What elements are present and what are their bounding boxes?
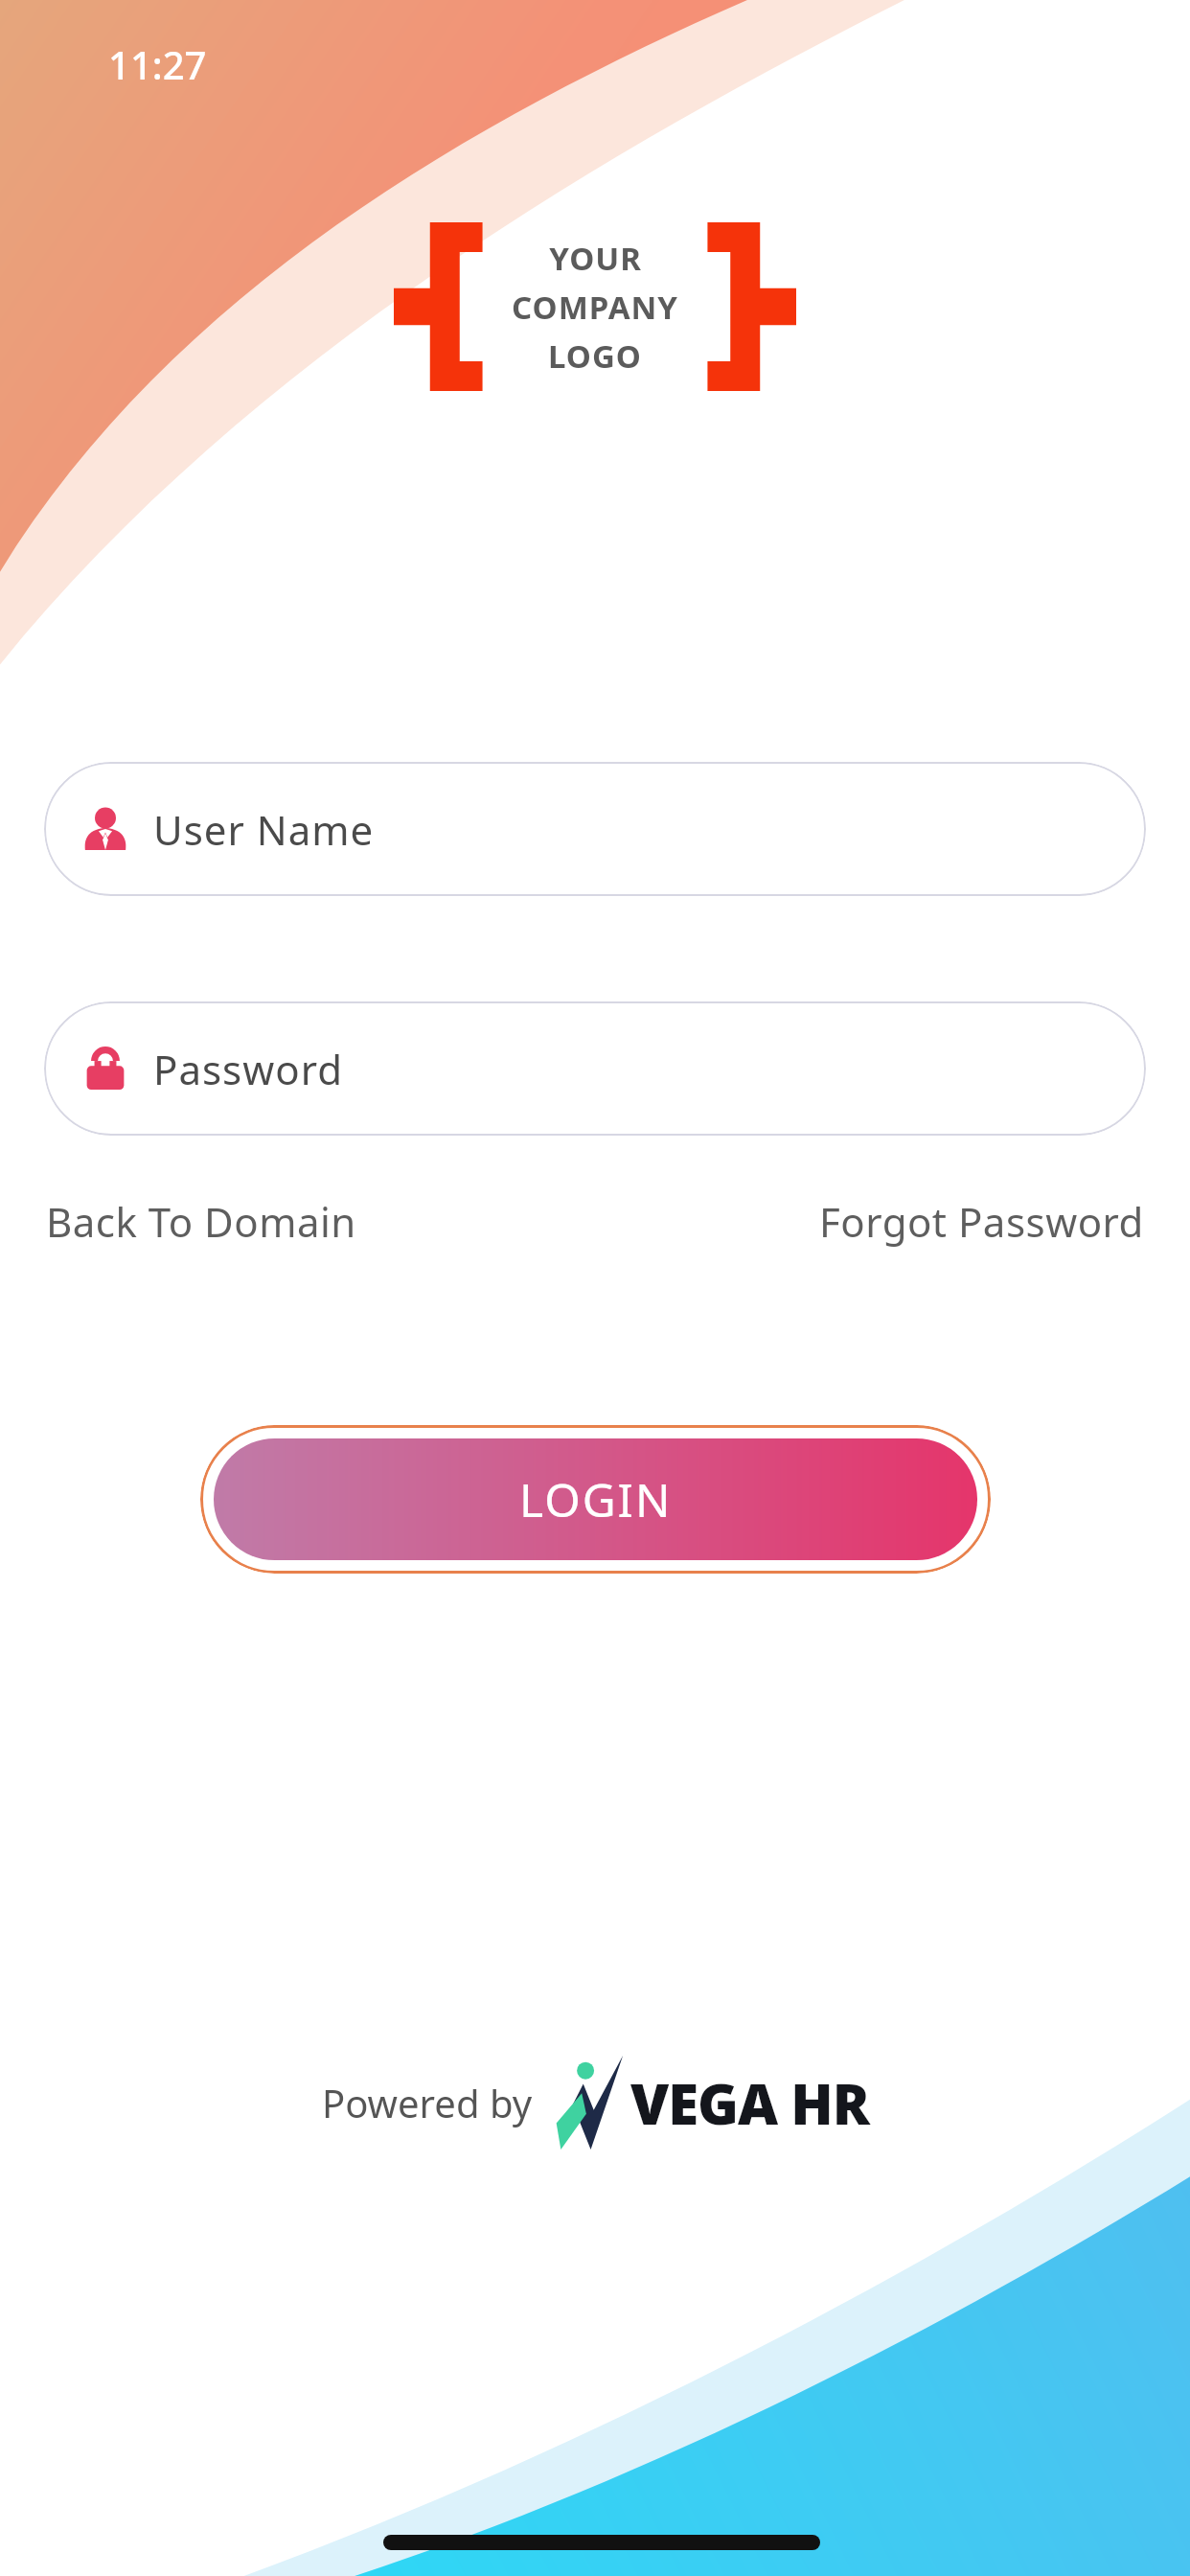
staticText: 11:27 — [108, 38, 207, 90]
staticText: YOUR — [549, 237, 642, 280]
staticText: COMPANY — [512, 286, 678, 329]
staticText: Back To Domain — [46, 1194, 356, 1249]
button[interactable]: Forgot Password — [817, 1188, 1146, 1254]
staticText: User Name — [153, 802, 375, 857]
button[interactable]: Password field — [44, 1001, 1146, 1136]
staticText: LOGIN — [519, 1468, 673, 1530]
button[interactable]: Back To Domain — [44, 1188, 358, 1254]
staticText: LOGO — [548, 334, 642, 378]
staticText: Forgot Password — [819, 1194, 1144, 1249]
button[interactable]: User name field — [44, 762, 1146, 896]
staticText: VEGA HR — [630, 2065, 869, 2141]
staticText: Powered by — [322, 2077, 533, 2128]
button[interactable]: LOGIN — [200, 1425, 991, 1574]
staticText: Password — [153, 1042, 343, 1096]
